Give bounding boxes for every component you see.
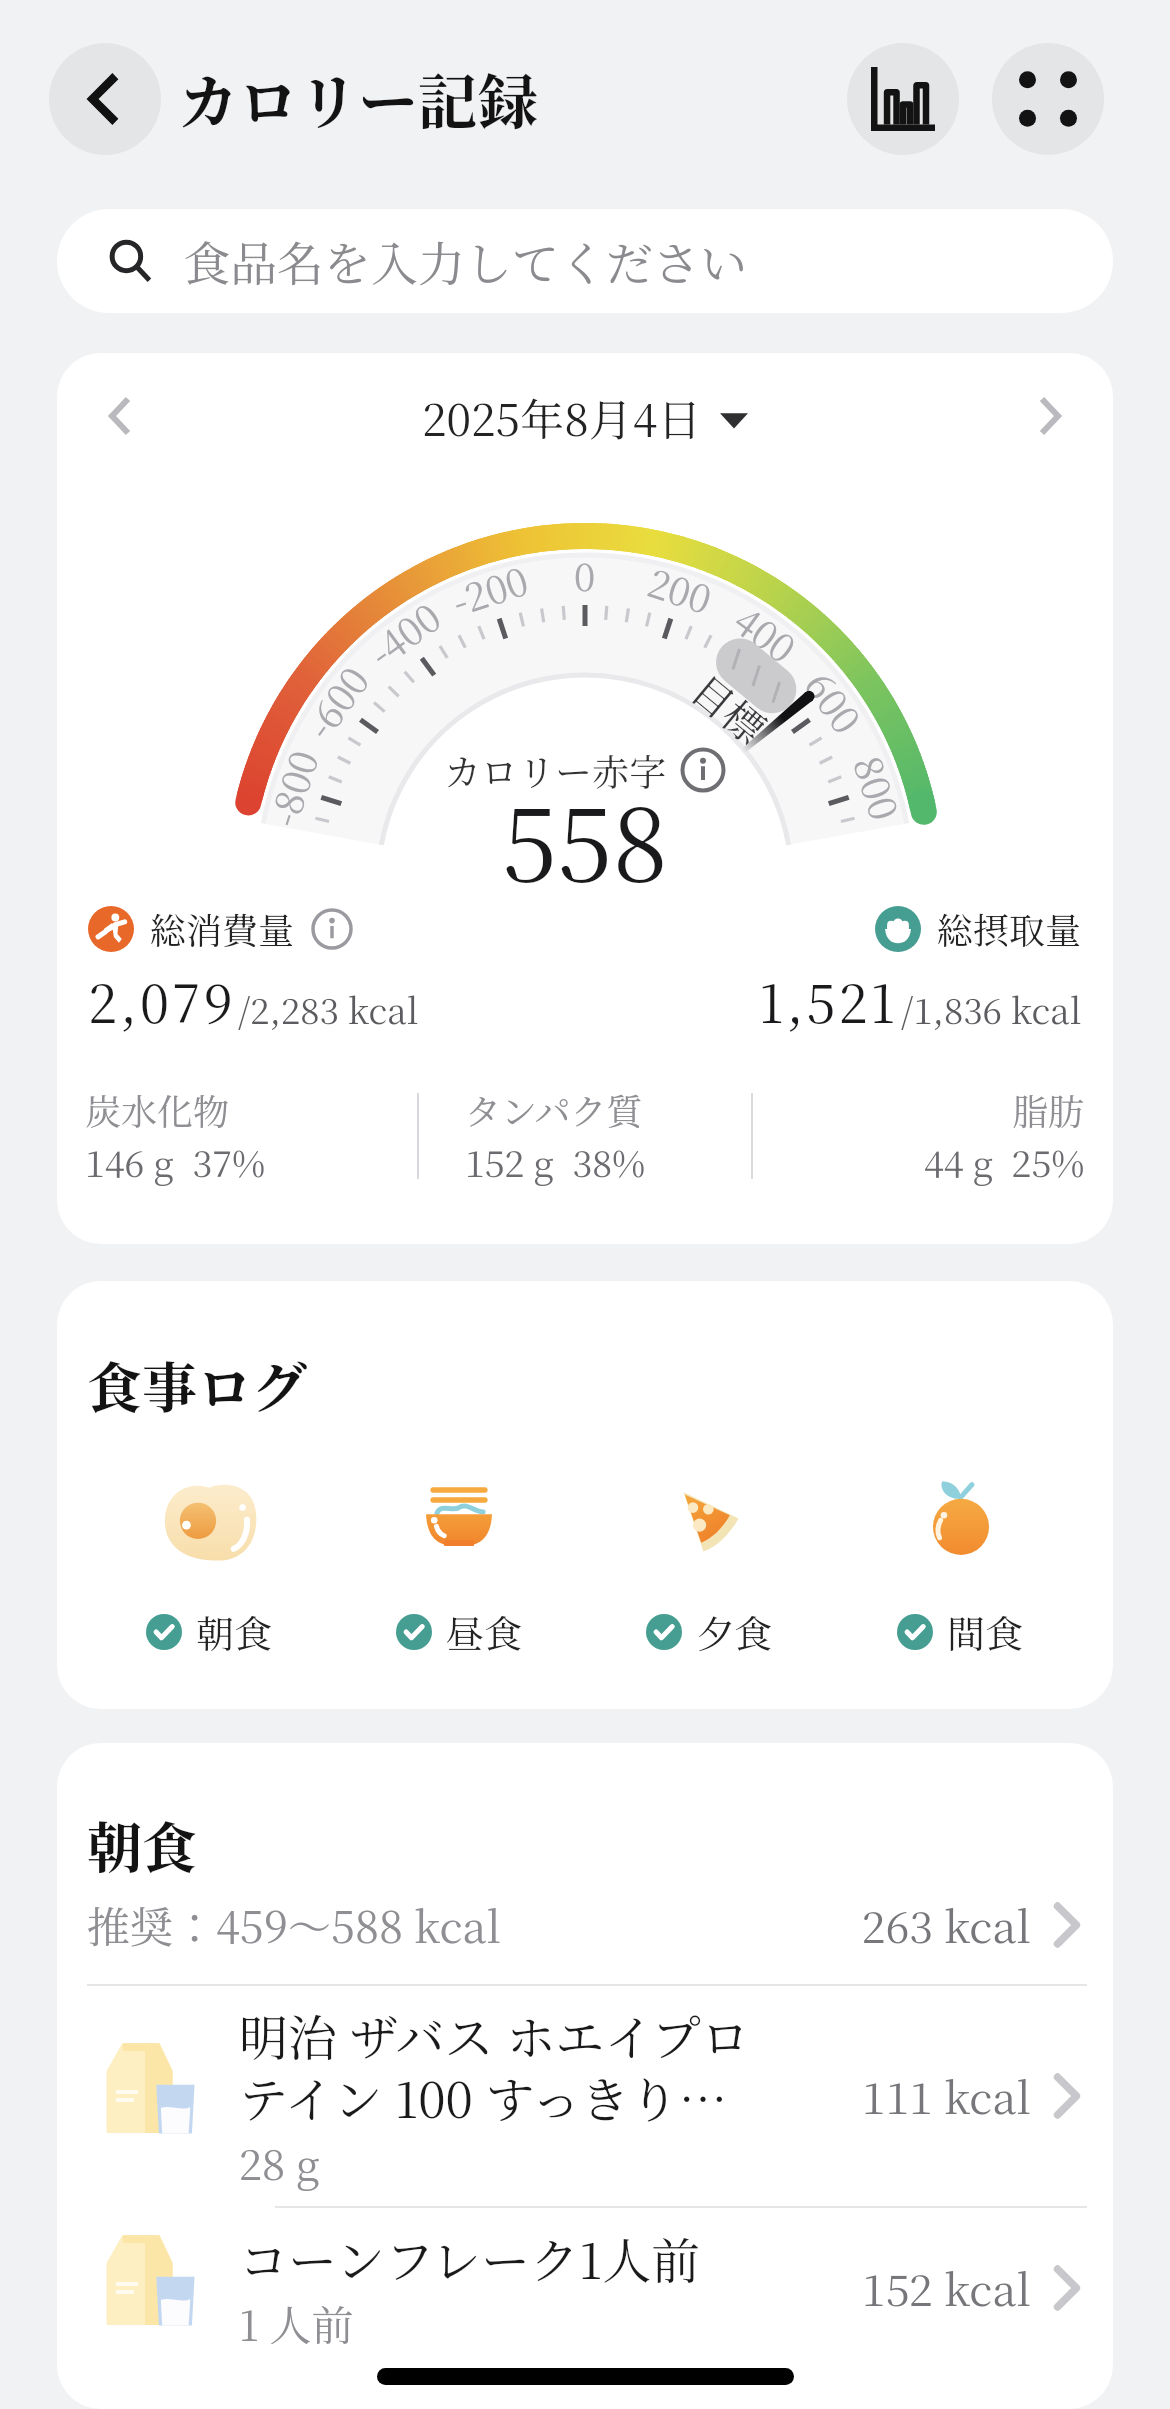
staticText: 炭水化物 [85, 1084, 230, 1136]
button[interactable]: More options [992, 43, 1104, 155]
staticText: /2,283 kcal [238, 984, 419, 1034]
staticText: 152 kcal [862, 2257, 1031, 2319]
staticText: 昼食 [446, 1604, 523, 1659]
staticText: 1,521 [759, 963, 899, 1038]
staticText: 食事ログ [87, 1345, 308, 1424]
button[interactable]: 朝食 [84, 1468, 334, 1659]
staticText: 152 g 38% [465, 1136, 646, 1188]
staticText: 263 kcal [862, 1894, 1031, 1956]
button[interactable]: Next day [1013, 379, 1087, 453]
staticText: 2,079 [88, 963, 236, 1038]
staticText: 1 人前 [239, 2293, 354, 2353]
button[interactable]: 間食 [835, 1468, 1086, 1659]
button[interactable]: 推奨：459〜588 kcal [87, 1894, 1087, 1956]
staticText: 111 kcal [862, 2065, 1031, 2127]
staticText: 食品名を入力してください [183, 227, 747, 295]
button[interactable]: 夕食 [584, 1468, 835, 1659]
staticText: 2025年8月4日 [422, 385, 702, 448]
staticText: コーンフレーク1人前 [239, 2223, 701, 2293]
button[interactable]: Back [49, 43, 161, 155]
staticText: 146 g 37% [85, 1136, 266, 1188]
staticText: 28 g [239, 2132, 320, 2192]
staticText: カロリー赤字 [444, 743, 666, 796]
staticText: 推奨：459〜588 kcal [87, 1894, 501, 1956]
staticText: 明治 ザバス ホエイプロ テイン 100 すっきり… [239, 2000, 750, 2132]
staticText: タンパク質 [465, 1084, 643, 1136]
staticText: カロリー記録 [178, 55, 538, 141]
button[interactable]: 明治 ザバス ホエイプロ テイン 100 すっきり… [83, 2000, 1087, 2192]
staticText: 朝食 [87, 1805, 198, 1884]
staticText: 総消費量 [150, 903, 295, 955]
button[interactable]: コーンフレーク1人前 [83, 2222, 1087, 2354]
staticText: 44 g 25% [924, 1136, 1085, 1188]
staticText: 間食 [947, 1604, 1024, 1659]
button[interactable]: Statistics [847, 43, 959, 155]
staticText: 558 [502, 768, 668, 910]
staticText: 脂肪 [1012, 1084, 1085, 1136]
staticText: 朝食 [196, 1604, 273, 1659]
staticText: 夕食 [696, 1604, 773, 1659]
staticText: 総摂取量 [937, 903, 1082, 955]
button[interactable]: 昼食 [334, 1468, 584, 1659]
button[interactable]: 食品名を入力してください [57, 209, 1113, 313]
button[interactable]: Previous day [83, 379, 157, 453]
staticText: /1,836 kcal [901, 984, 1082, 1034]
